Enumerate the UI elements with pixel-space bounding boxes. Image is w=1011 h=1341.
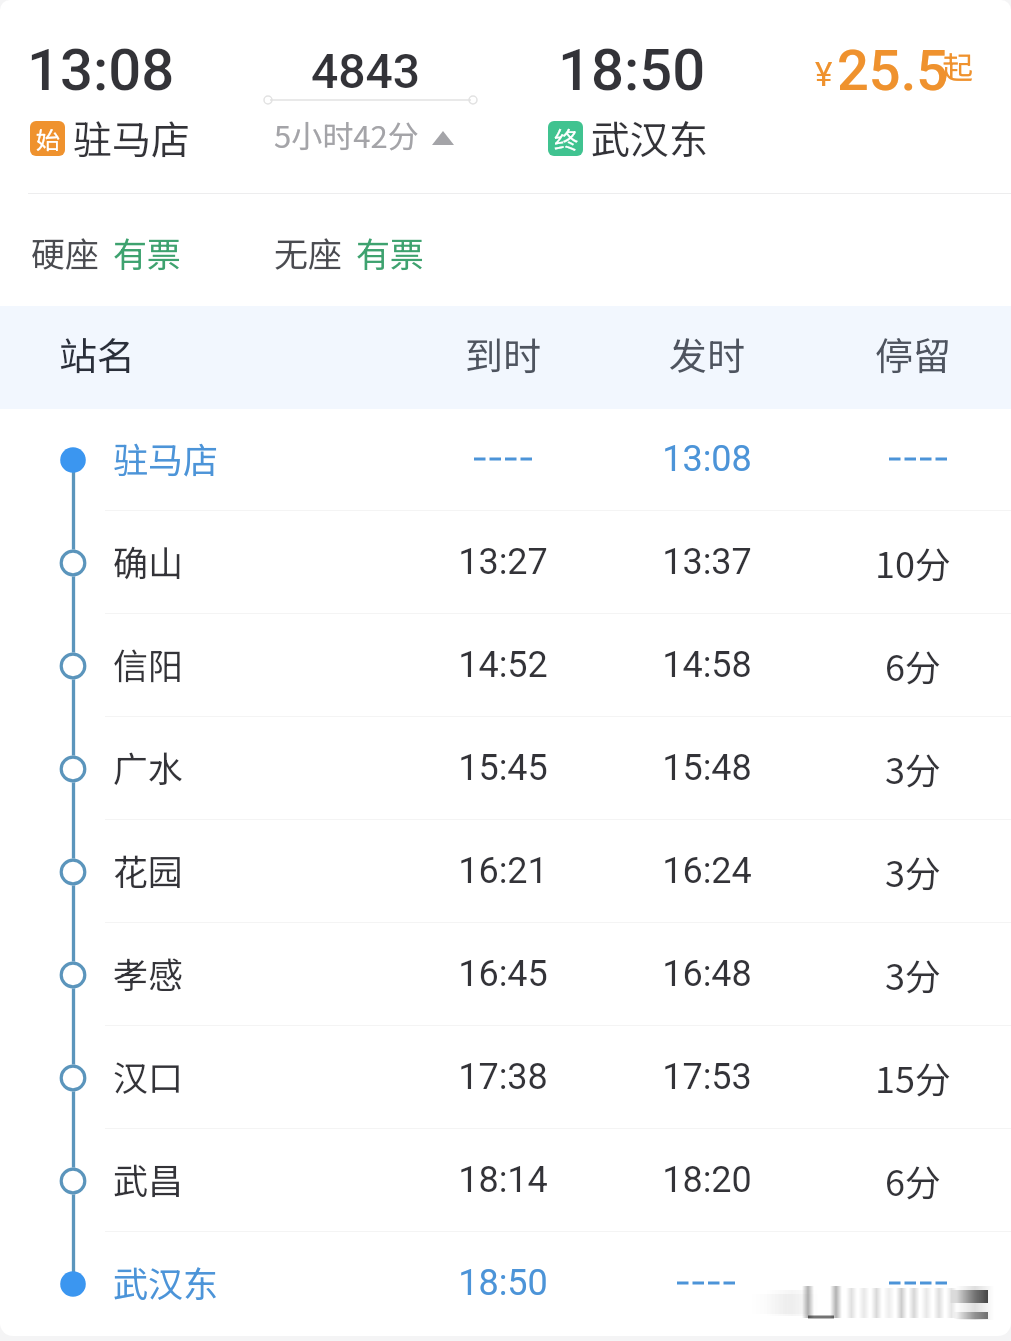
staticText: 站名 <box>59 326 136 381</box>
staticText: 发时 <box>617 326 797 381</box>
staticText: 始 <box>36 121 60 156</box>
staticText: 13:27 <box>413 541 593 583</box>
staticText: 13:08 <box>617 438 797 480</box>
staticText: 18:50 <box>558 36 706 104</box>
staticText: 武汉东 <box>113 1256 219 1307</box>
staticText: 无座 <box>274 228 342 277</box>
staticText: 驻马店 <box>73 109 191 165</box>
staticText: 16:45 <box>413 953 593 995</box>
staticText: 5小时42分 <box>274 112 419 157</box>
staticText: 17:38 <box>413 1056 593 1098</box>
staticText: 16:24 <box>617 850 797 892</box>
button[interactable]: 广水 <box>0 717 1011 820</box>
staticText: 14:58 <box>617 644 797 686</box>
button[interactable]: 武汉东 <box>0 1232 1011 1335</box>
other: Collapse <box>432 131 454 145</box>
staticText: 广水 <box>113 741 184 792</box>
button[interactable]: 孝感 <box>0 923 1011 1026</box>
button[interactable]: 始 <box>30 110 191 166</box>
button[interactable]: 硬座 <box>31 228 181 277</box>
button[interactable]: 信阳 <box>0 614 1011 717</box>
staticText: 3分 <box>823 742 1003 794</box>
staticText: 确山 <box>113 535 184 586</box>
staticText: 15:45 <box>413 747 593 789</box>
staticText: 起 <box>942 43 973 88</box>
staticText: 6分 <box>823 639 1003 691</box>
button[interactable]: 花园 <box>0 820 1011 923</box>
staticText: 3分 <box>823 845 1003 897</box>
staticText: 15:48 <box>617 747 797 789</box>
staticText: 硬座 <box>31 228 99 277</box>
staticText: 3分 <box>823 948 1003 1000</box>
staticText: 15分 <box>823 1051 1003 1103</box>
staticText: 14:52 <box>413 644 593 686</box>
staticText: 10分 <box>823 536 1003 588</box>
button[interactable]: 汉口 <box>0 1026 1011 1129</box>
staticText: 13:08 <box>27 36 175 104</box>
staticText: 16:21 <box>413 850 593 892</box>
staticText: 17:53 <box>617 1056 797 1098</box>
staticText: 终 <box>554 121 578 156</box>
staticText: 6分 <box>823 1154 1003 1206</box>
staticText: ¥ <box>815 55 833 94</box>
staticText: 停留 <box>823 326 1003 381</box>
staticText: 25.5 <box>837 38 949 104</box>
staticText: 武汉东 <box>591 109 709 165</box>
staticText: 武昌 <box>113 1153 184 1204</box>
button[interactable]: 终 <box>548 110 709 166</box>
staticText: 孝感 <box>113 947 184 998</box>
staticText: 花园 <box>113 844 184 895</box>
button[interactable]: 武昌 <box>0 1129 1011 1232</box>
staticText: 信阳 <box>113 638 184 689</box>
button[interactable]: 确山 <box>0 511 1011 614</box>
button[interactable]: 驻马店 <box>0 408 1011 511</box>
button[interactable]: ¥ <box>805 30 990 100</box>
staticText: 驻马店 <box>113 432 219 483</box>
staticText: 18:20 <box>617 1159 797 1201</box>
staticText: 16:48 <box>617 953 797 995</box>
staticText: 有票 <box>113 228 181 277</box>
staticText: 13:37 <box>617 541 797 583</box>
staticText: 18:14 <box>413 1159 593 1201</box>
staticText: 4843 <box>311 43 421 99</box>
staticText: 汉口 <box>113 1050 184 1101</box>
staticText: 18:50 <box>413 1262 593 1304</box>
staticText: 有票 <box>356 228 424 277</box>
button[interactable]: 无座 <box>274 228 424 277</box>
staticText: 到时 <box>413 326 593 381</box>
